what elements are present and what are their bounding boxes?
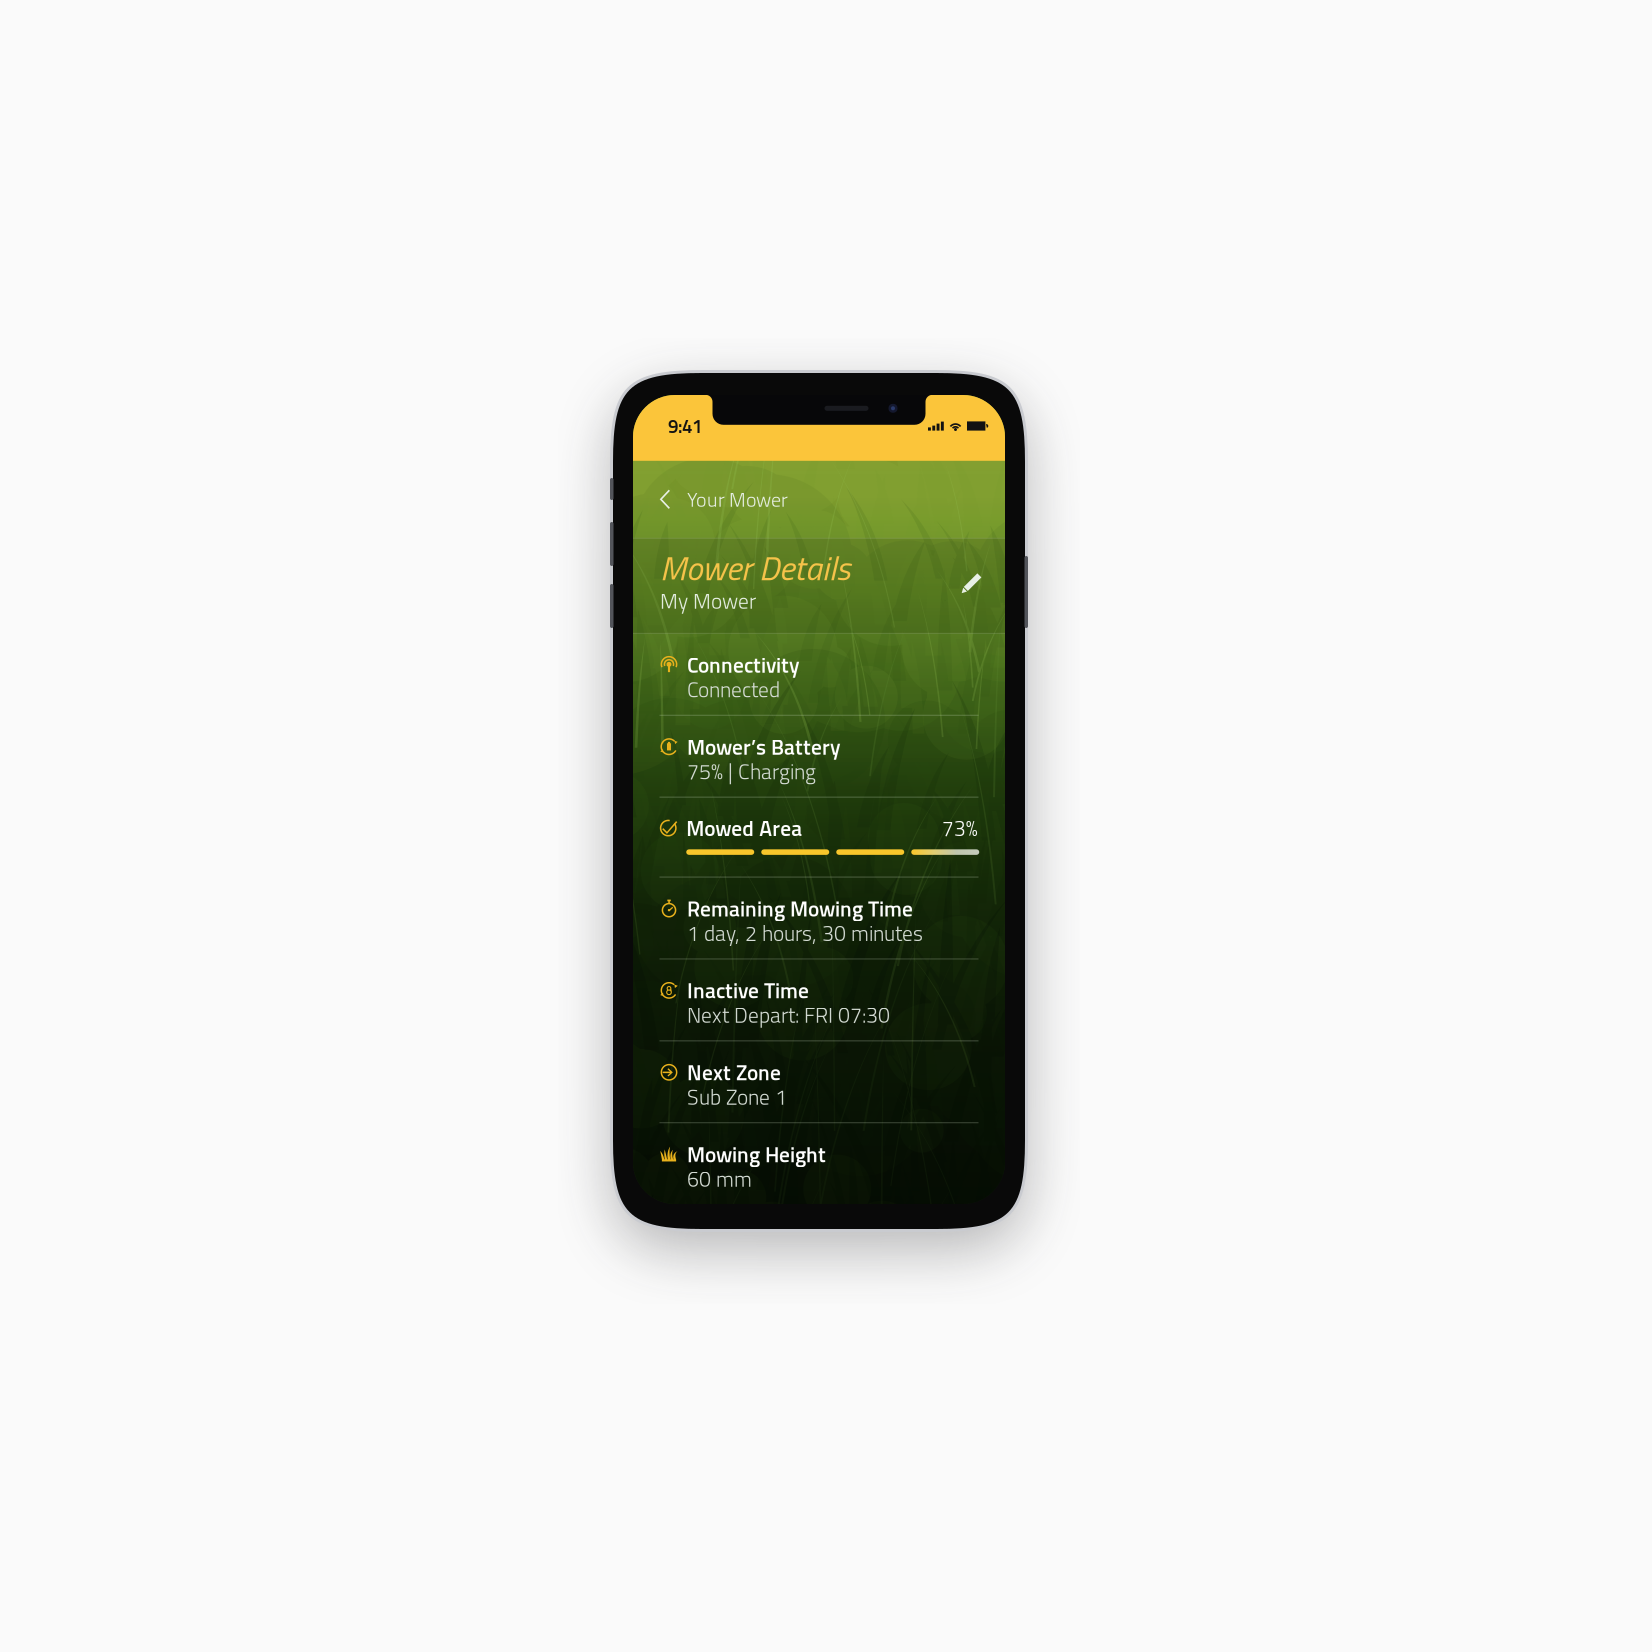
staticText: Connectivity: [687, 649, 799, 681]
staticText: 73%: [942, 812, 978, 844]
staticText: Mowed Area: [686, 812, 802, 844]
staticText: Next Zone: [687, 1056, 781, 1088]
staticText: Next Depart: FRI 07:30: [687, 999, 890, 1031]
button[interactable]: Your Mower: [659, 470, 788, 528]
button[interactable]: Rename mower: [960, 538, 981, 591]
staticText: Inactive Time: [687, 974, 809, 1007]
staticText: Mowing Height: [687, 1138, 826, 1170]
staticText: 1 day, 2 hours, 30 minutes: [687, 917, 923, 949]
staticText: Mower’s Battery: [687, 730, 840, 763]
staticText: My Mower: [660, 585, 756, 617]
staticText: Mower Details: [660, 542, 850, 593]
button[interactable]: Inactive Time: [659, 959, 978, 1040]
staticText: 75% | Charging: [687, 755, 816, 787]
staticText: Sub Zone 1: [687, 1081, 787, 1113]
staticText: 60 mm: [687, 1162, 752, 1195]
staticText: Your Mower: [687, 484, 788, 514]
staticText: Remaining Mowing Time: [687, 892, 913, 925]
button[interactable]: Connectivity: [659, 634, 978, 715]
button[interactable]: Mowing Height: [659, 1123, 978, 1204]
button[interactable]: Remaining Mowing Time: [659, 877, 978, 958]
staticText: 9:41: [668, 412, 702, 440]
button[interactable]: Mower’s Battery: [659, 716, 978, 797]
staticText: Connected: [687, 673, 780, 705]
button[interactable]: Next Zone: [659, 1041, 978, 1122]
button[interactable]: Mowed Area: [659, 798, 978, 877]
